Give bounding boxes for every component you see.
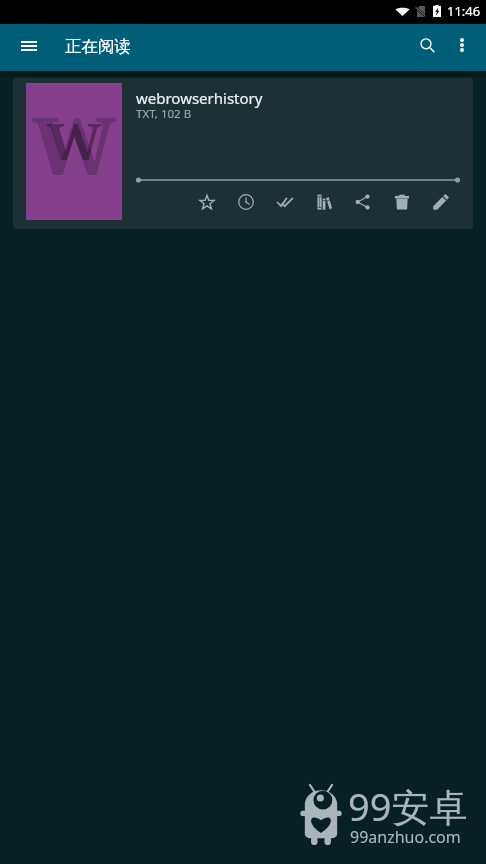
button[interactable]: Rename [421, 182, 460, 222]
button[interactable]: Move to library [304, 182, 343, 222]
staticText: W [47, 105, 102, 174]
button[interactable]: Favourite [187, 182, 226, 222]
staticText: 正在阅读 [65, 36, 131, 57]
button[interactable]: History [226, 182, 265, 222]
button[interactable]: W [13, 78, 473, 229]
staticText: 99安卓 [348, 780, 468, 832]
button[interactable]: Mark as read [265, 182, 304, 222]
button[interactable]: Search [405, 23, 449, 67]
button[interactable]: Open navigation menu [5, 22, 53, 69]
button[interactable]: Delete [382, 182, 421, 222]
staticText: TXT, 102 B [136, 106, 192, 122]
staticText: W [32, 91, 117, 199]
button[interactable]: Share [343, 182, 382, 222]
staticText: 99anzhuo.com [350, 826, 461, 848]
staticText: 11:46 [447, 2, 481, 20]
button[interactable]: More options [442, 25, 482, 65]
staticText: webrowserhistory [136, 88, 263, 108]
